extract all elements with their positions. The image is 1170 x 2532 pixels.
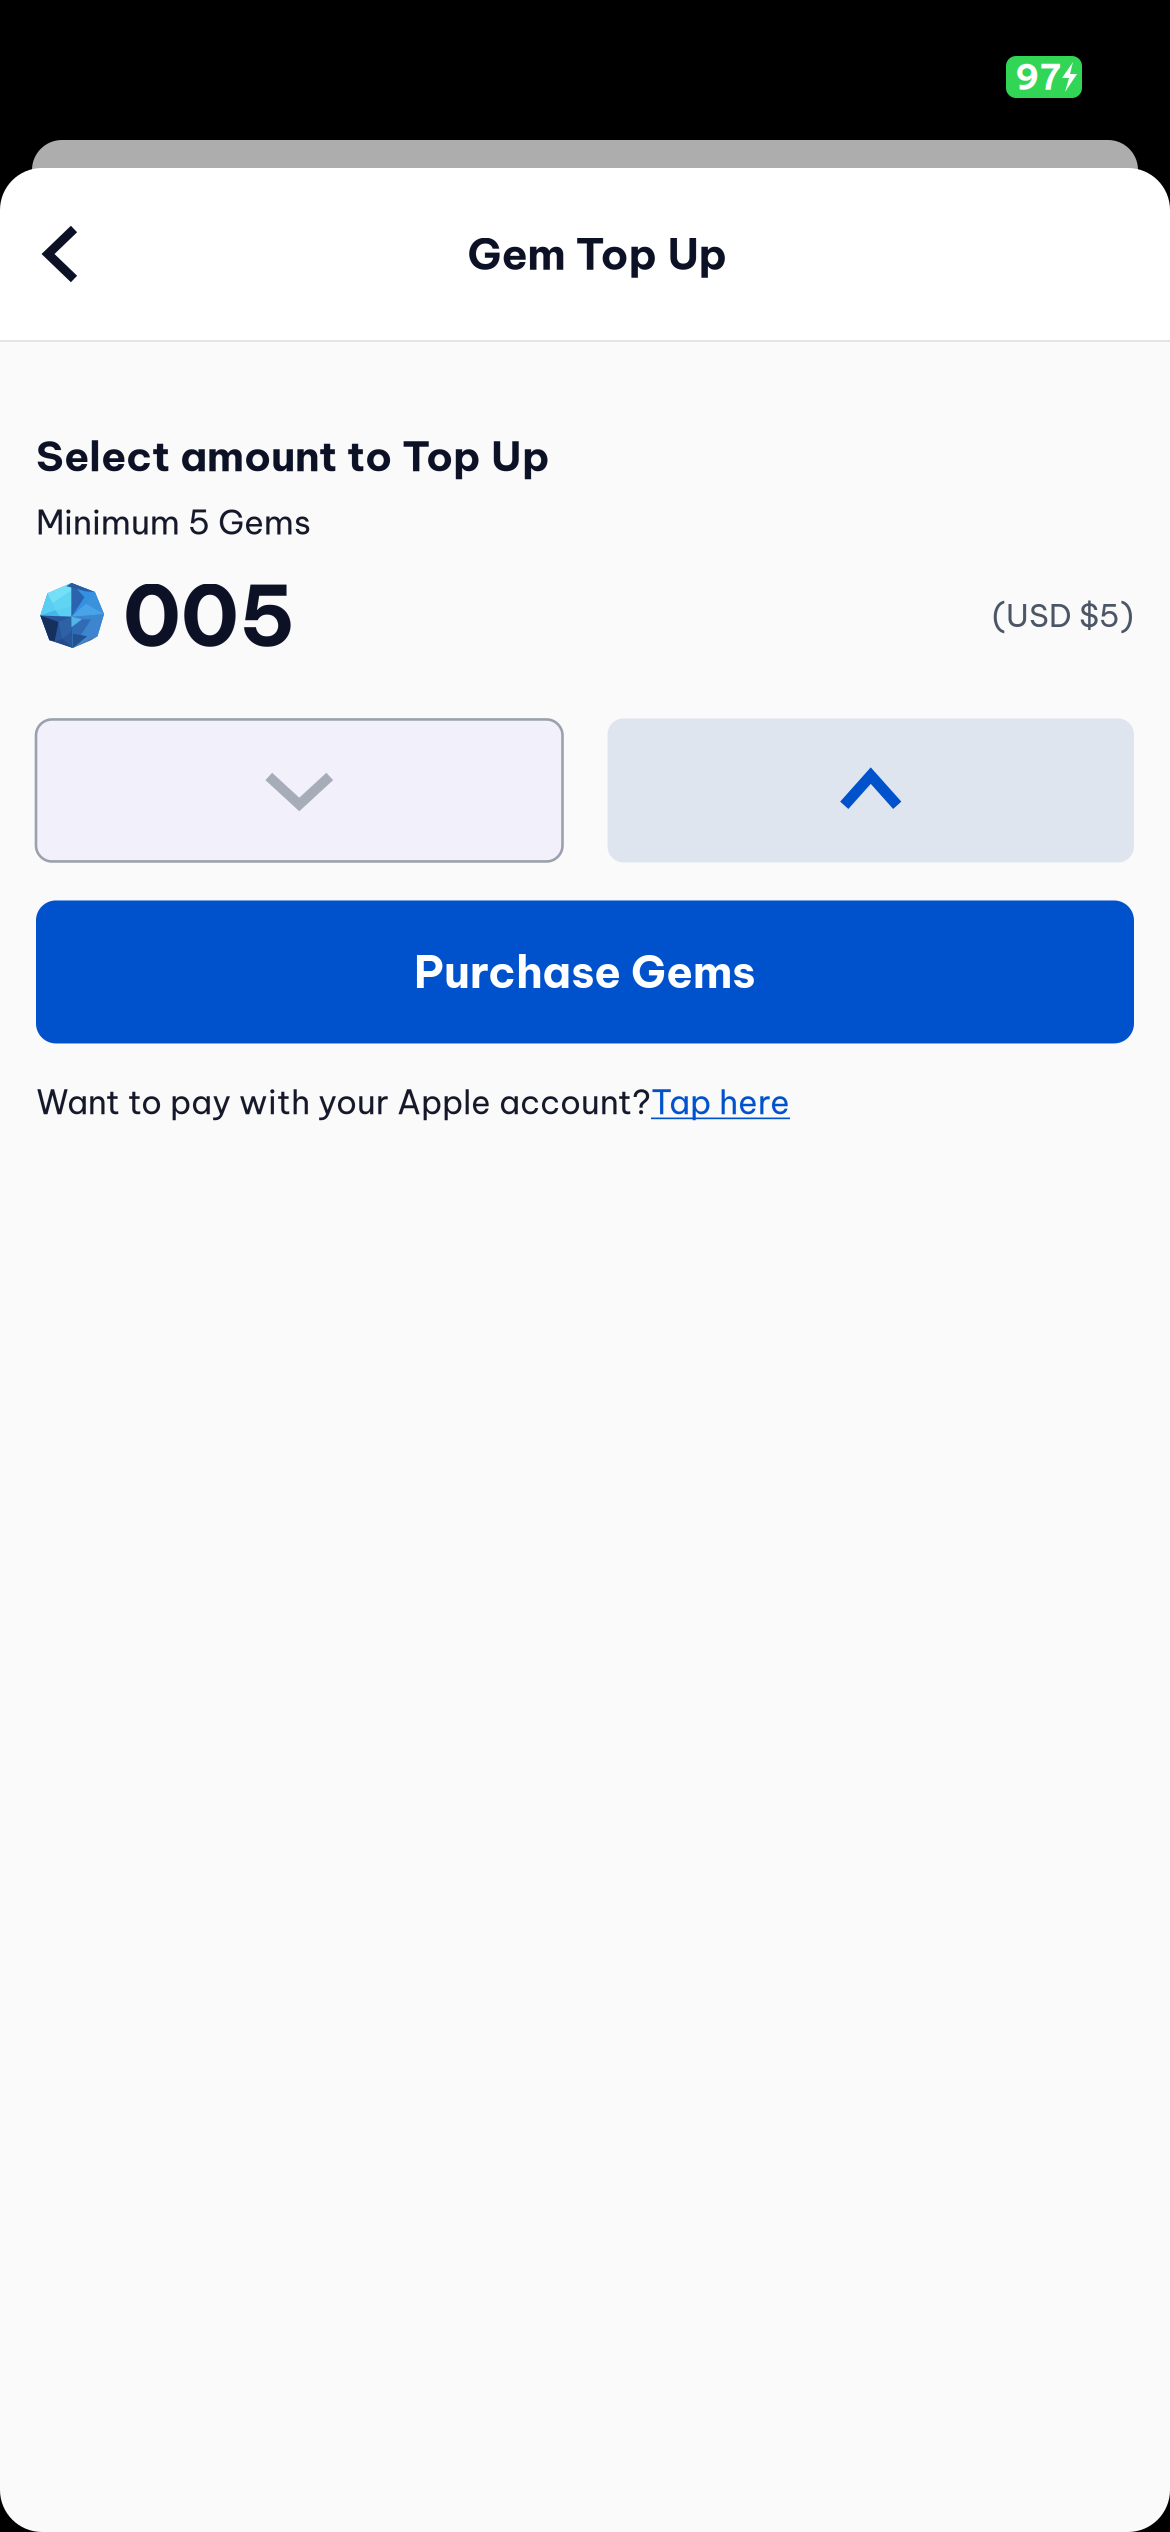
staticText: Tap here [651, 1081, 790, 1123]
button[interactable]: Tap here [651, 1081, 790, 1123]
staticText: Want to pay with your Apple account? [36, 1081, 651, 1123]
staticText: 97 [1015, 55, 1061, 99]
staticText: Select amount to Top Up [36, 430, 550, 482]
staticText: Purchase Gems [414, 944, 756, 1000]
button[interactable]: Increase amount [607, 718, 1134, 862]
button[interactable]: Back [0, 189, 111, 319]
staticText: 005 [123, 563, 295, 668]
button[interactable]: Purchase Gems [36, 900, 1134, 1043]
staticText: Minimum 5 Gems [36, 501, 311, 543]
staticText: (USD $5) [992, 596, 1134, 635]
staticText: Gem Top Up [467, 227, 727, 281]
button[interactable]: Decrease amount [36, 719, 562, 861]
